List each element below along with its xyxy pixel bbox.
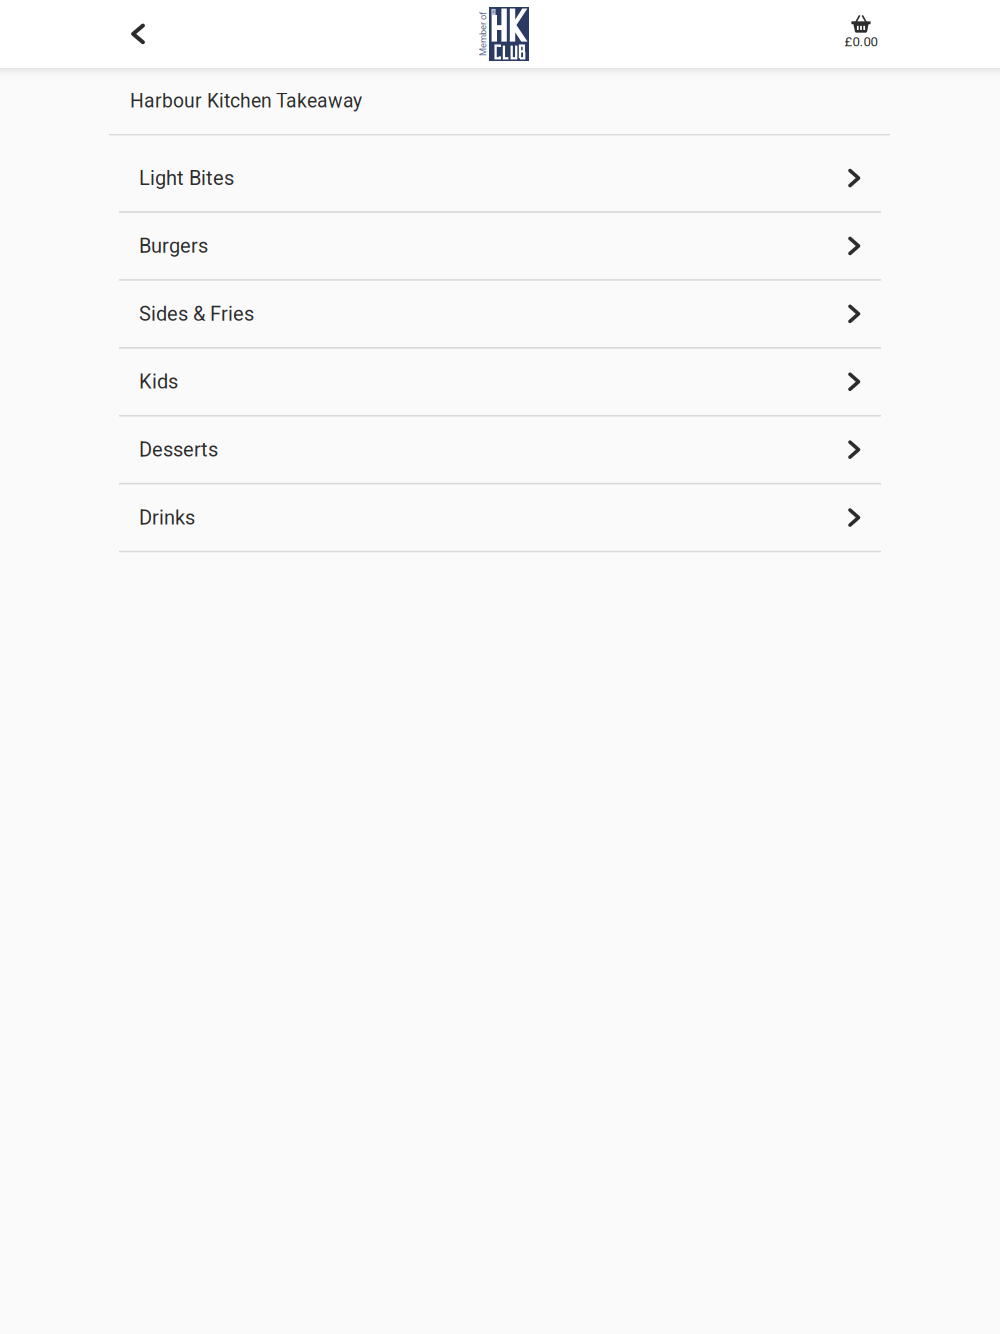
button[interactable]: Basket, £0.00 bbox=[796, 0, 926, 68]
staticText: Sides & Fries bbox=[139, 302, 254, 325]
staticText: £0.00 bbox=[844, 34, 877, 50]
staticText: Light Bites bbox=[139, 166, 234, 190]
button[interactable]: Burgers bbox=[0, 213, 1000, 281]
button[interactable]: Light Bites bbox=[0, 145, 1000, 213]
staticText: Desserts bbox=[139, 438, 218, 461]
button[interactable]: Kids bbox=[0, 349, 1000, 416]
button[interactable]: Drinks bbox=[0, 484, 1000, 552]
staticText: Kids bbox=[139, 370, 178, 393]
button[interactable]: Sides & Fries bbox=[0, 281, 1000, 349]
staticText: Harbour Kitchen Takeaway bbox=[130, 90, 362, 112]
button[interactable]: Back bbox=[100, 0, 176, 68]
staticText: Drinks bbox=[139, 506, 195, 529]
staticText: Burgers bbox=[139, 234, 208, 258]
button[interactable]: Desserts bbox=[0, 416, 1000, 484]
staticText: Member of bbox=[461, 28, 505, 39]
